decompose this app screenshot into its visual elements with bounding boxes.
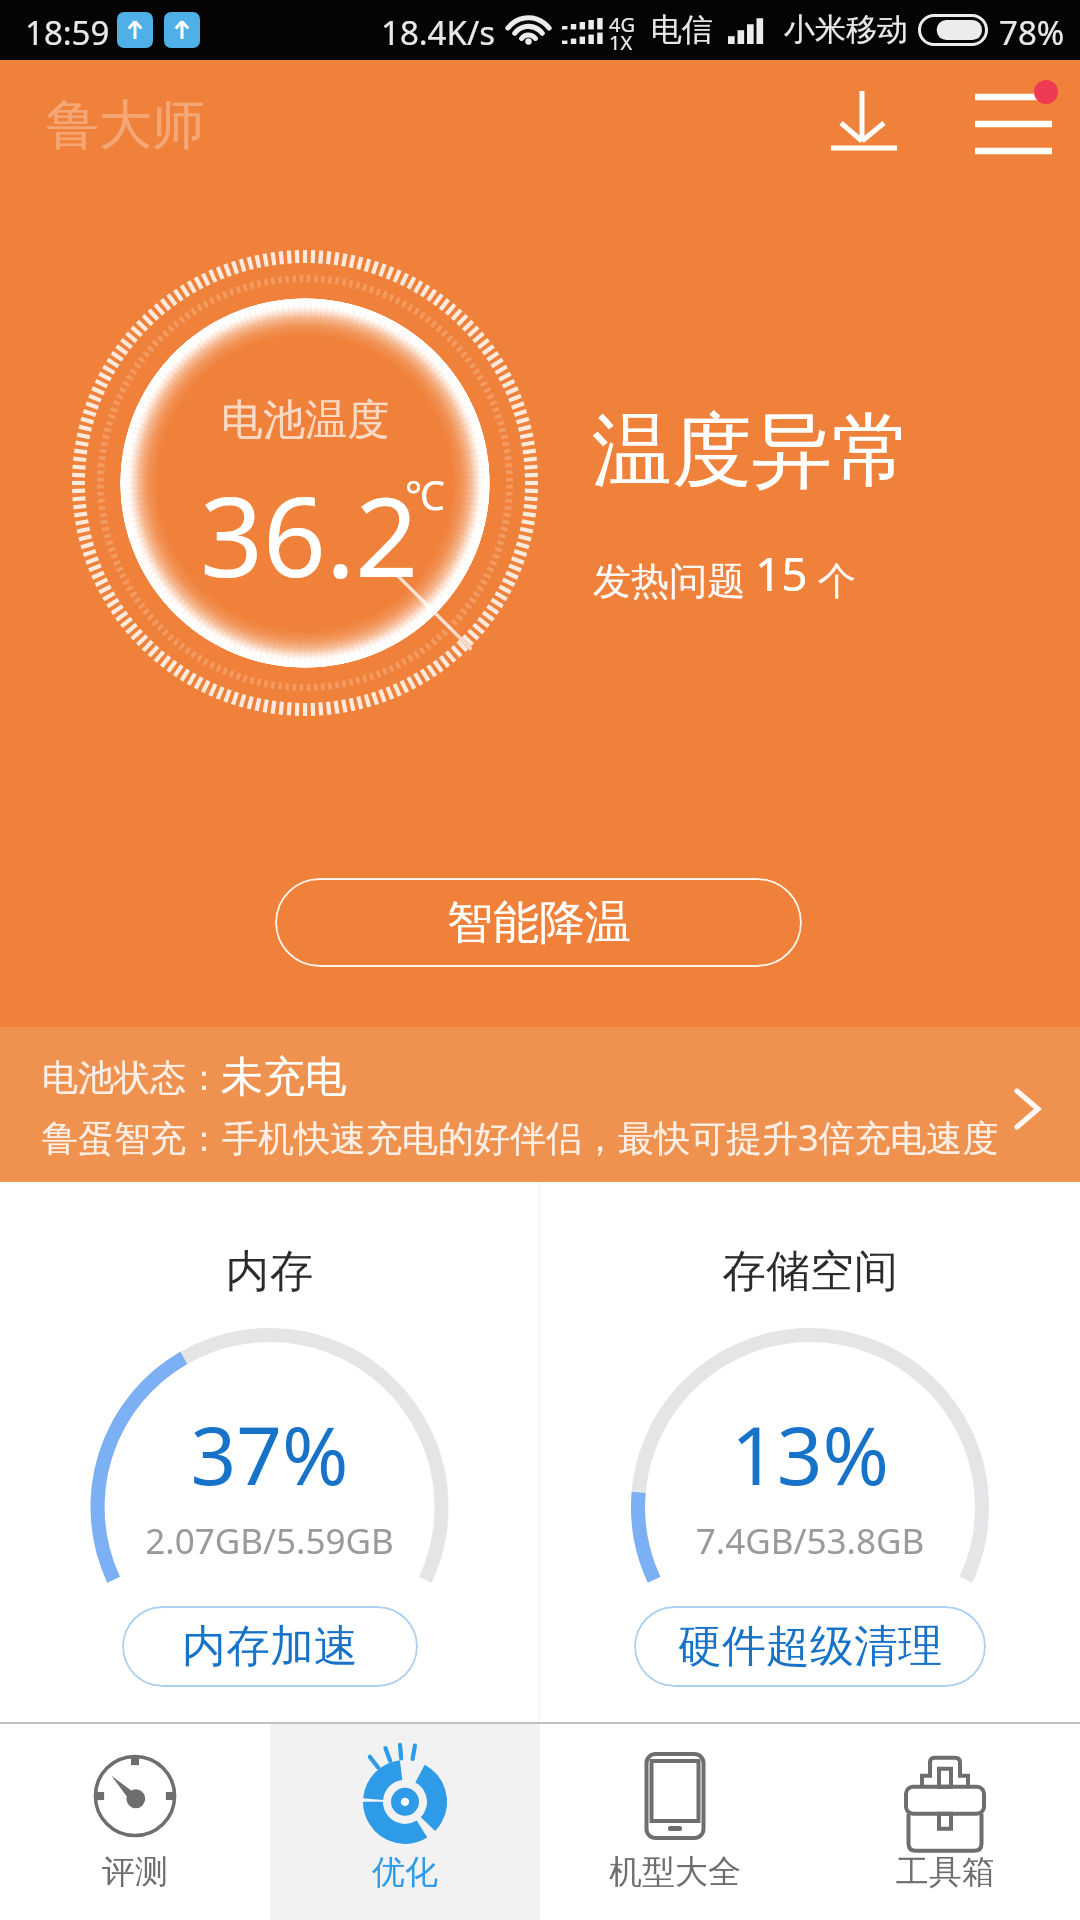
staticText: 78% <box>999 10 1065 55</box>
staticText: 电信 <box>651 10 713 49</box>
button[interactable]: Downloads <box>812 68 916 176</box>
staticText: 小米移动 <box>784 10 908 49</box>
staticText: 15 <box>755 542 808 605</box>
button[interactable]: 工具箱 <box>810 1724 1080 1920</box>
staticText: 存储空间 <box>540 1244 1080 1299</box>
staticText: 评测 <box>102 1851 168 1893</box>
staticText: 优化 <box>372 1851 438 1893</box>
staticText: 18.4K/s <box>381 10 495 55</box>
button[interactable]: 内存加速 <box>122 1606 418 1687</box>
staticText: 2.07GB/5.59GB <box>0 1517 539 1565</box>
button[interactable]: 评测 <box>0 1724 270 1920</box>
button[interactable]: 硬件超级清理 <box>634 1606 986 1687</box>
staticText: 13% <box>540 1399 1080 1508</box>
staticText: 温度异常 <box>592 401 912 502</box>
staticText: 工具箱 <box>896 1851 995 1893</box>
staticText: 1X <box>609 29 633 56</box>
staticText: 未充电 <box>221 1051 347 1104</box>
staticText: 37% <box>0 1399 539 1508</box>
staticText: 鲁大师 <box>46 92 205 159</box>
button[interactable]: 优化 <box>270 1724 540 1920</box>
staticText: 电池状态： <box>42 1055 222 1100</box>
staticText: 18:59 <box>25 10 110 55</box>
staticText: 发热问题 <box>593 553 755 605</box>
staticText: ℃ <box>405 467 445 521</box>
button[interactable]: Menu <box>953 46 1065 166</box>
staticText: 鲁蛋智充：手机快速充电的好伴侣，最快可提升3倍充电速度 <box>42 1113 999 1162</box>
staticText: 智能降温 <box>447 894 631 952</box>
button[interactable]: 电池状态： <box>0 1027 1080 1182</box>
staticText: 7.4GB/53.8GB <box>540 1517 1080 1565</box>
button[interactable]: 机型大全 <box>540 1724 810 1920</box>
button[interactable]: 智能降温 <box>275 878 802 967</box>
staticText: 4G <box>609 11 635 38</box>
staticText: 内存加速 <box>182 1619 358 1674</box>
staticText: 36.2 <box>200 459 419 609</box>
staticText: 内存 <box>0 1244 539 1299</box>
staticText: 机型大全 <box>609 1851 741 1893</box>
staticText: 电池温度 <box>65 394 545 447</box>
staticText: 硬件超级清理 <box>678 1619 942 1674</box>
staticText: 个 <box>808 553 856 605</box>
